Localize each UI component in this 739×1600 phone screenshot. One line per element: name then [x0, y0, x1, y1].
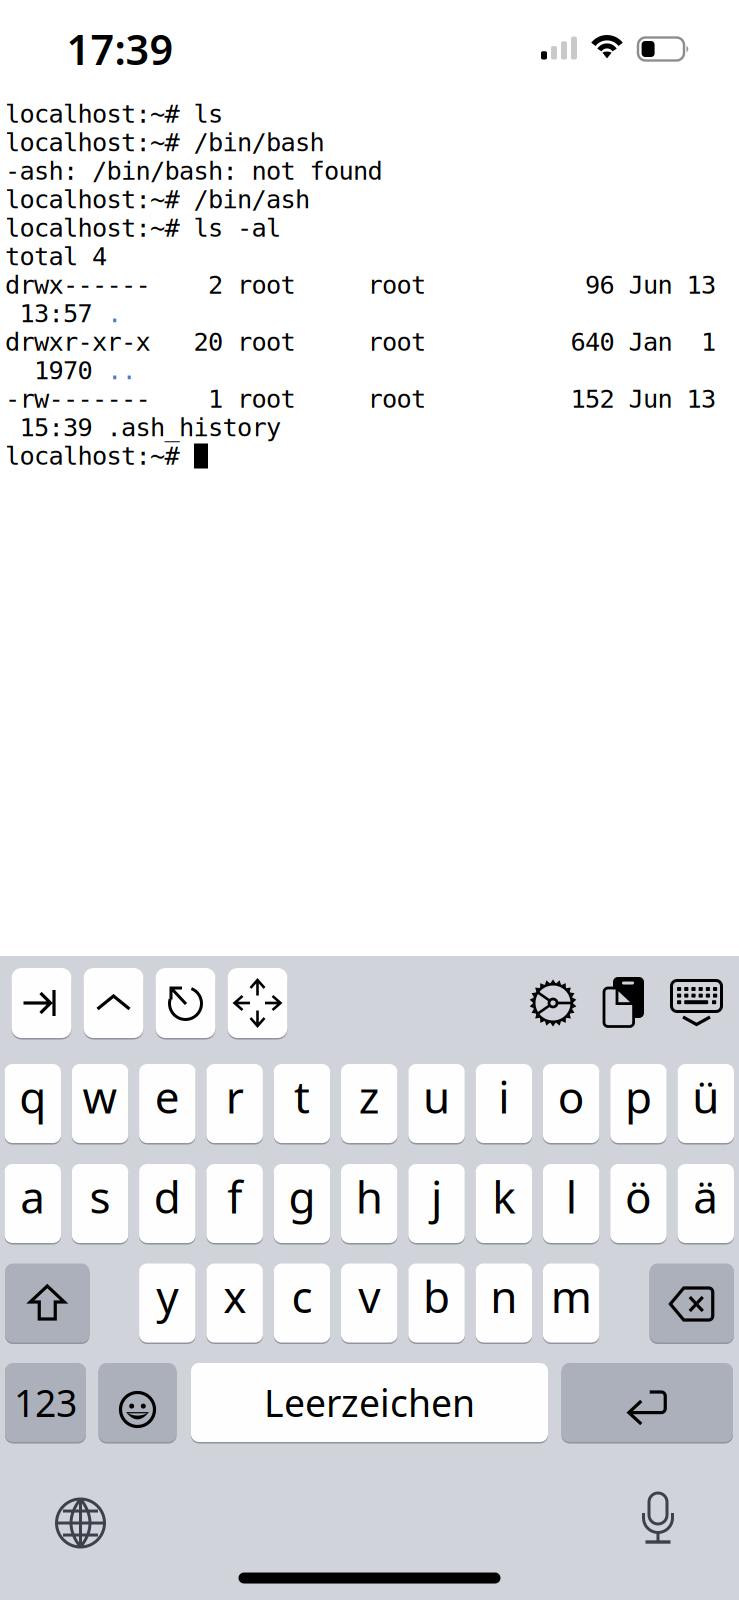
staticText: drwxr-xr-x 20 root root 640 Jan 1 — [5, 327, 716, 357]
staticText: x — [223, 1267, 246, 1325]
staticText: z — [359, 1067, 380, 1126]
staticText: 15:39 .ash_history — [5, 413, 281, 442]
button[interactable]: r — [206, 1064, 263, 1143]
button[interactable]: j — [408, 1164, 465, 1243]
staticText: m — [551, 1267, 592, 1325]
staticText: h — [356, 1167, 383, 1226]
button[interactable]: p — [610, 1064, 667, 1143]
button[interactable]: Control — [83, 968, 143, 1038]
staticText: c — [291, 1267, 312, 1325]
staticText: 1970 — [5, 356, 107, 385]
button[interactable]: f — [206, 1164, 263, 1243]
staticText: a — [20, 1167, 45, 1226]
staticText: -ash: /bin/bash: not found — [5, 156, 382, 186]
button[interactable]: h — [341, 1164, 397, 1243]
staticText: b — [423, 1267, 450, 1325]
staticText: . — [107, 299, 122, 328]
button[interactable]: Arrow keys — [227, 968, 287, 1038]
staticText: y — [156, 1267, 178, 1325]
staticText: q — [19, 1067, 46, 1126]
staticText: f — [227, 1167, 242, 1226]
button[interactable]: ö — [610, 1164, 667, 1243]
button[interactable]: Tab — [11, 968, 71, 1038]
staticText: ö — [625, 1167, 652, 1226]
staticText: drwx------ 2 root root 96 Jun 13 — [5, 270, 716, 300]
button[interactable]: Undo — [155, 968, 215, 1038]
staticText: u — [423, 1067, 450, 1126]
staticText: r — [226, 1067, 244, 1126]
button[interactable]: d — [139, 1164, 196, 1243]
button[interactable]: Leerzeichen — [191, 1363, 548, 1442]
staticText: d — [154, 1167, 181, 1226]
button[interactable]: Paste — [591, 970, 657, 1036]
staticText: w — [82, 1067, 117, 1126]
button[interactable]: y — [139, 1263, 196, 1342]
staticText: t — [294, 1067, 310, 1126]
staticText: localhost:~# /bin/ash — [5, 185, 310, 214]
button[interactable]: n — [476, 1263, 532, 1342]
button[interactable]: m — [543, 1263, 599, 1342]
staticText: g — [288, 1167, 315, 1226]
staticText: .. — [107, 356, 136, 385]
staticText: Leerzeichen — [264, 1378, 475, 1427]
button[interactable]: k — [476, 1164, 532, 1243]
button[interactable]: a — [4, 1164, 61, 1243]
staticText: localhost:~# ls -al — [5, 213, 281, 243]
staticText: 17:39 — [66, 22, 173, 76]
staticText: p — [625, 1067, 652, 1126]
button[interactable]: v — [341, 1263, 397, 1342]
button[interactable]: Hide keyboard — [663, 970, 729, 1036]
button[interactable]: Settings — [520, 970, 586, 1036]
staticText: v — [358, 1267, 380, 1325]
staticText: s — [89, 1167, 110, 1226]
button[interactable]: 123 — [5, 1363, 86, 1442]
button[interactable]: z — [341, 1064, 397, 1143]
staticText: localhost:~# ls — [5, 99, 223, 129]
button[interactable]: ä — [677, 1164, 734, 1243]
staticText: total 4 — [5, 242, 107, 271]
staticText: 123 — [14, 1378, 77, 1427]
staticText: -rw------- 1 root root 152 Jun 13 — [5, 384, 716, 414]
staticText: k — [492, 1167, 515, 1226]
button[interactable]: i — [476, 1064, 532, 1143]
button[interactable]: q — [4, 1064, 61, 1143]
button[interactable]: o — [543, 1064, 599, 1143]
button[interactable]: c — [274, 1263, 330, 1342]
staticText: 13:57 — [5, 299, 107, 328]
button[interactable]: e — [139, 1064, 196, 1143]
button[interactable]: Shift — [5, 1263, 89, 1342]
button[interactable]: Emoji — [98, 1363, 176, 1442]
button[interactable]: t — [274, 1064, 330, 1143]
button[interactable]: Delete — [649, 1263, 734, 1342]
staticText: ä — [693, 1167, 718, 1226]
staticText: o — [558, 1067, 585, 1126]
button[interactable]: Next keyboard — [45, 1488, 115, 1558]
staticText: l — [566, 1167, 577, 1226]
button[interactable]: b — [408, 1263, 465, 1342]
button[interactable]: u — [408, 1064, 465, 1143]
staticText: j — [431, 1167, 442, 1226]
button[interactable]: w — [72, 1064, 128, 1143]
staticText: i — [498, 1067, 509, 1126]
button[interactable]: ü — [677, 1064, 734, 1143]
staticText: n — [490, 1267, 517, 1325]
button[interactable]: l — [543, 1164, 599, 1243]
button[interactable]: x — [206, 1263, 263, 1342]
staticText: localhost:~# /bin/bash — [5, 128, 324, 157]
button[interactable]: g — [274, 1164, 330, 1243]
button[interactable]: s — [72, 1164, 128, 1243]
button[interactable]: Dictate — [623, 1486, 693, 1556]
button[interactable]: Return — [561, 1363, 733, 1442]
staticText: ü — [692, 1067, 719, 1126]
staticText: e — [155, 1067, 180, 1126]
staticText: localhost:~# — [5, 441, 194, 471]
